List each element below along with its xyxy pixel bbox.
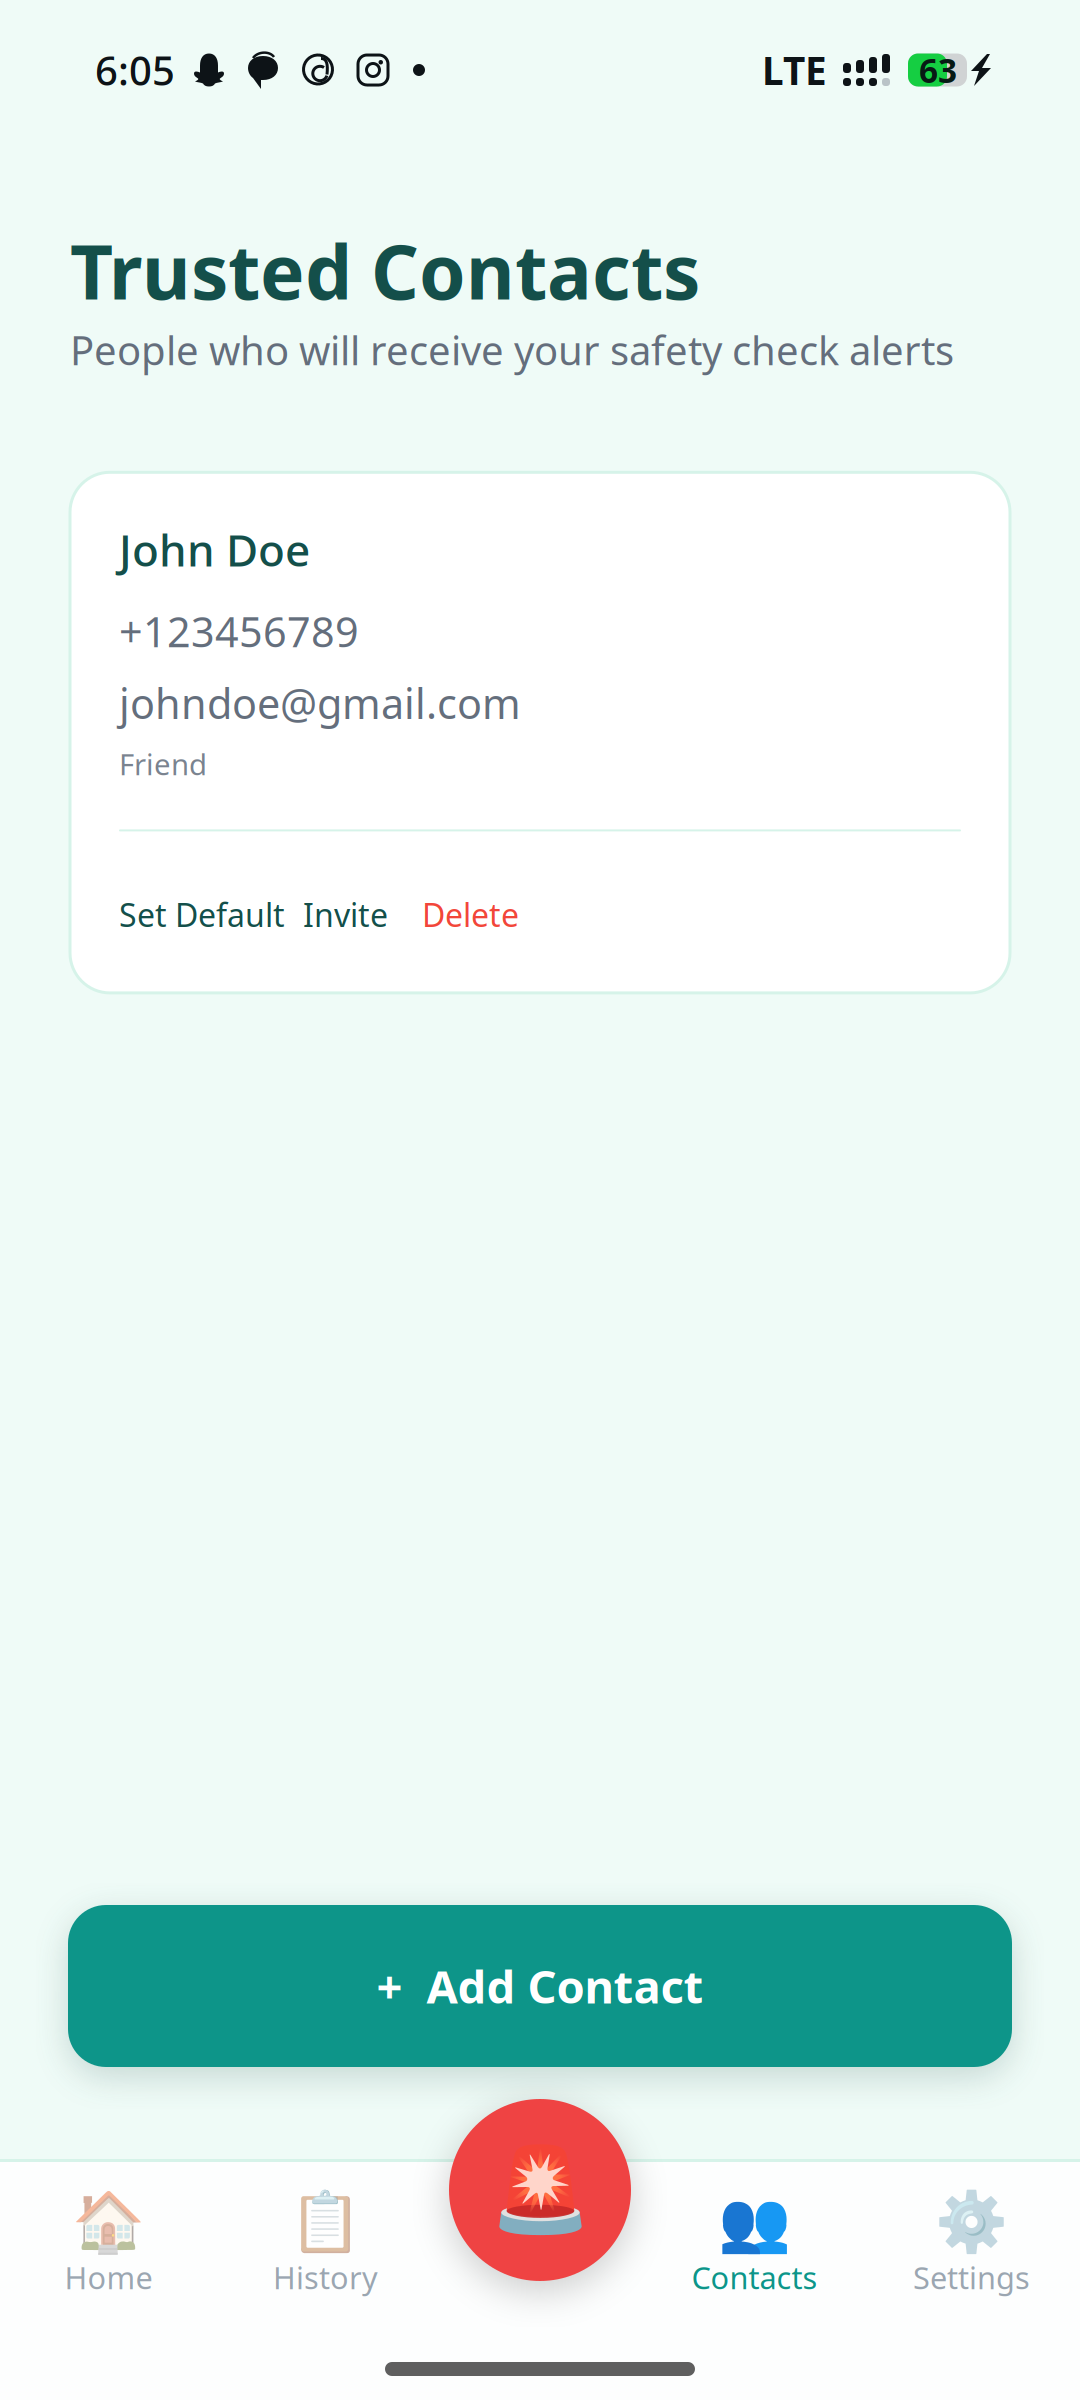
staticText: Set Default: [119, 893, 285, 936]
button[interactable]: 🏠: [0, 2188, 217, 2298]
staticText: Contacts: [691, 2257, 817, 2298]
staticText: 👥: [718, 2188, 791, 2255]
staticText: Trusted Contacts: [70, 221, 700, 320]
staticText: History: [273, 2257, 378, 2298]
button[interactable]: ⚙️: [863, 2188, 1080, 2298]
staticText: John Doe: [119, 520, 310, 579]
staticText: Home: [64, 2257, 152, 2298]
staticText: johndoe@gmail.com: [119, 676, 521, 730]
staticText: 🚨: [488, 2143, 591, 2237]
staticText: Settings: [913, 2257, 1030, 2298]
staticText: People who will receive your safety chec…: [70, 323, 954, 376]
staticText: 📋: [289, 2188, 362, 2255]
staticText: 63: [919, 48, 957, 92]
button[interactable]: Invite: [303, 893, 388, 936]
button[interactable]: Delete: [422, 893, 519, 936]
staticText: +123456789: [119, 604, 359, 659]
staticText: Friend: [119, 744, 207, 783]
staticText: 🏠: [72, 2188, 145, 2255]
staticText: Delete: [422, 893, 519, 936]
button[interactable]: +: [0, 1905, 1080, 2067]
staticText: LTE: [762, 44, 827, 96]
staticText: +: [376, 1956, 402, 2016]
button[interactable]: 📋: [217, 2188, 434, 2298]
staticText: Invite: [303, 893, 388, 936]
button[interactable]: 👥: [646, 2188, 863, 2298]
staticText: 6:05: [95, 43, 175, 96]
button[interactable]: SOS Emergency: [449, 2099, 631, 2281]
button[interactable]: Set Default: [119, 893, 285, 936]
staticText: Add Contact: [426, 1956, 703, 2016]
staticText: ⚙️: [935, 2188, 1008, 2255]
